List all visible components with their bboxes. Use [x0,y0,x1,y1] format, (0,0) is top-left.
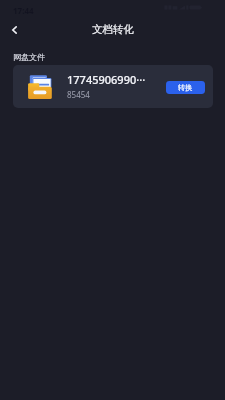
staticText: 文档转化 [92,23,134,36]
staticText: 17745906990··· [67,72,146,87]
staticText: 转换 [178,83,193,92]
staticText: 85454 [67,89,90,100]
button[interactable]: 17745906990··· [13,65,213,108]
button[interactable]: 转换 [166,81,205,94]
button[interactable]: Back [2,18,26,42]
staticText: 17:44 [13,5,34,16]
staticText: 网盘文件 [13,52,45,62]
